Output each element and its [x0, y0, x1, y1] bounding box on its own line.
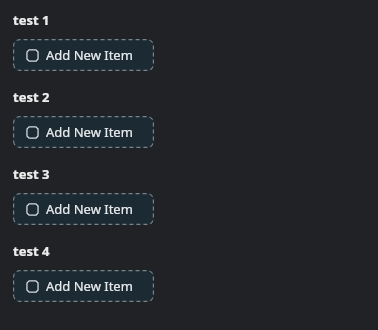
staticText: test 3: [13, 165, 50, 183]
staticText: Add New Item: [46, 123, 133, 141]
staticText: test 1: [13, 11, 50, 29]
button[interactable]: Add New Item: [13, 270, 154, 302]
button[interactable]: Add New Item: [13, 193, 154, 225]
staticText: test 4: [13, 242, 50, 260]
other: Add New Item: [26, 126, 39, 139]
other: Add New Item: [26, 280, 39, 293]
staticText: Add New Item: [46, 277, 133, 295]
button[interactable]: Add New Item: [13, 39, 154, 71]
other: Add New Item: [26, 203, 39, 216]
staticText: Add New Item: [46, 200, 133, 218]
button[interactable]: Add New Item: [13, 116, 154, 148]
staticText: test 2: [13, 88, 50, 106]
other: Add New Item: [26, 49, 39, 62]
staticText: Add New Item: [46, 46, 133, 64]
